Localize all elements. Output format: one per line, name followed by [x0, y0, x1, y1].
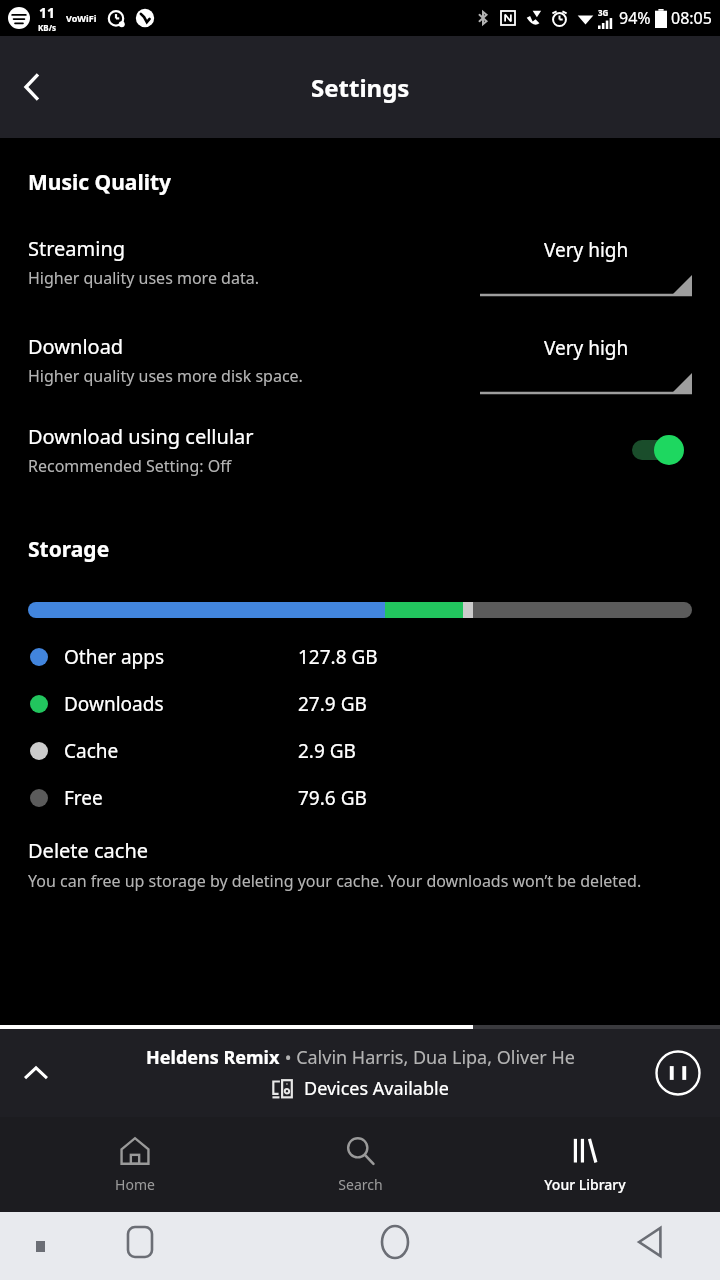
staticText: Settings: [311, 71, 410, 104]
staticText: Higher quality uses more data.: [28, 267, 259, 289]
staticText: Streaming: [28, 235, 126, 262]
button[interactable]: Back: [620, 1212, 680, 1272]
staticText: Download using cellular: [28, 423, 254, 450]
button[interactable]: Download using cellular: [28, 423, 692, 477]
staticText: 08:05: [671, 7, 712, 29]
staticText: Free: [64, 785, 103, 811]
staticText: KB/s: [38, 22, 56, 33]
staticText: Heldens Remix: [146, 1045, 280, 1070]
button[interactable]: Back: [0, 55, 64, 119]
button[interactable]: Download: [28, 333, 692, 393]
button[interactable]: Pause: [650, 1045, 706, 1101]
staticText: Delete cache: [28, 837, 149, 864]
staticText: 94%: [619, 7, 651, 29]
staticText: Very high: [544, 335, 629, 361]
button[interactable]: Expand player: [12, 1049, 60, 1097]
button[interactable]: Streaming: [28, 235, 692, 295]
button[interactable]: Home: [45, 1129, 225, 1200]
button[interactable]: Home: [365, 1212, 425, 1272]
staticText: Your Library: [544, 1175, 626, 1194]
staticText: Downloads: [64, 691, 164, 717]
staticText: 79.6 GB: [298, 785, 367, 811]
staticText: Home: [115, 1175, 155, 1194]
button[interactable]: Delete cache: [28, 837, 692, 892]
staticText: Cache: [64, 738, 119, 764]
staticText: VoWiFi: [66, 12, 97, 24]
staticText: 27.9 GB: [298, 691, 367, 717]
staticText: Recommended Setting: Off: [28, 455, 232, 477]
staticText: • Calvin Harris, Dua Lipa, Oliver He: [280, 1045, 575, 1070]
staticText: Search: [338, 1175, 383, 1194]
staticText: Very high: [544, 237, 629, 263]
staticText: Other apps: [64, 644, 165, 670]
staticText: Devices Available: [304, 1076, 449, 1101]
staticText: 2.9 GB: [298, 738, 356, 764]
staticText: You can free up storage by deleting your…: [28, 870, 642, 892]
button[interactable]: Search: [270, 1129, 450, 1200]
staticText: 11: [39, 3, 56, 22]
staticText: Download: [28, 333, 124, 360]
staticText: 127.8 GB: [298, 644, 378, 670]
staticText: Higher quality uses more disk space.: [28, 365, 303, 387]
staticText: Storage: [28, 535, 110, 564]
button[interactable]: Recents: [110, 1212, 170, 1272]
button[interactable]: Your Library: [495, 1129, 675, 1200]
button[interactable]: Expand player: [0, 1029, 720, 1117]
staticText: Music Quality: [28, 168, 172, 197]
staticText: 3G: [598, 7, 609, 18]
